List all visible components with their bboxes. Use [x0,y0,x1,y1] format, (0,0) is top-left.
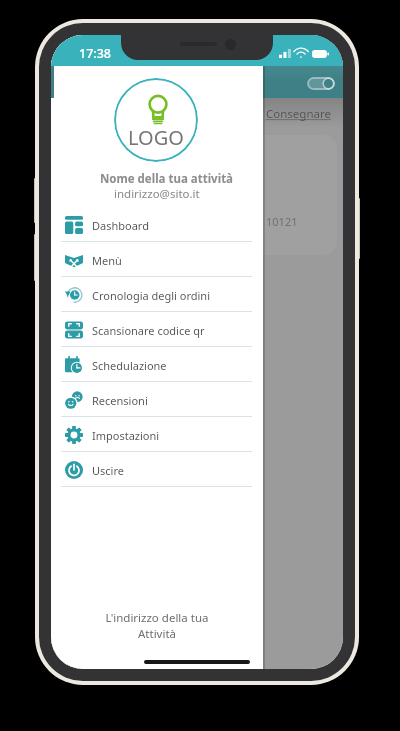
staticText: 17:38 [79,45,112,62]
staticText: L'indirizzo della tua Attività [51,610,263,642]
button[interactable]: Cronologia degli ordini [51,277,263,311]
staticText: Uscire [92,463,124,478]
button[interactable]: Recensioni [51,382,263,416]
staticText: indirizzo@sito.it [114,186,200,202]
staticText: Cronologia degli ordini [92,288,210,303]
button[interactable]: Dashboard [51,207,263,241]
staticText: LOGO [128,124,184,151]
staticText: Menù [92,253,122,268]
staticText: Dashboard [92,218,149,233]
staticText: Impostazioni [92,428,160,443]
button[interactable]: Menù [51,242,263,276]
button[interactable]: Uscire [51,452,263,486]
button[interactable]: Consegnare [266,106,331,122]
button[interactable]: Scansionare codice qr [51,312,263,346]
button[interactable]: Schedulazione [51,347,263,381]
button[interactable]: Impostazioni [51,417,263,451]
staticText: 10121 [266,214,298,229]
staticText: Nome della tua attività [100,171,234,187]
button[interactable]: Toggle delivery mode [307,77,335,90]
staticText: Schedulazione [92,358,167,373]
staticText: Recensioni [92,393,148,408]
staticText: Scansionare codice qr [92,323,205,338]
